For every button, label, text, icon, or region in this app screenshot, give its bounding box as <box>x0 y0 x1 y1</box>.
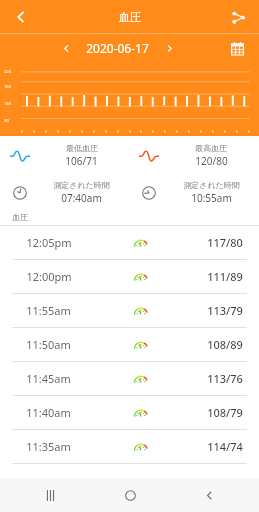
button[interactable]: 12:00pm <box>0 260 259 293</box>
staticText: 180 <box>4 84 11 89</box>
staticText: 0 <box>33 130 35 134</box>
staticText: 12:05pm <box>26 235 72 250</box>
staticText: 0 <box>93 130 95 134</box>
button[interactable]: 12:05pm <box>0 226 259 259</box>
staticText: 測定された時間 <box>53 180 110 190</box>
staticText: 0 <box>164 130 166 134</box>
staticText: 80 <box>4 118 9 123</box>
staticText: 0 <box>140 130 142 134</box>
staticText: 血圧 <box>12 212 28 222</box>
button[interactable]: 測定された時間 <box>0 180 129 205</box>
button[interactable]: 最低血圧 <box>0 143 129 168</box>
button[interactable]: 11:40am <box>0 396 259 429</box>
button[interactable]: 11:50am <box>0 328 259 361</box>
staticText: 0 <box>129 130 131 134</box>
staticText: 11:50am <box>26 337 71 352</box>
button[interactable]: 11:45am <box>0 362 259 395</box>
staticText: 0 <box>21 130 23 134</box>
staticText: 120/80 <box>195 154 228 168</box>
staticText: 最低血圧 <box>66 143 98 153</box>
staticText: 108/89 <box>207 337 243 352</box>
staticText: 2020-06-17 <box>86 40 149 56</box>
button[interactable]: Next day <box>161 40 177 56</box>
staticText: 測定された時間 <box>183 180 240 190</box>
button[interactable]: 11:55am <box>0 294 259 327</box>
button[interactable]: Home <box>116 481 144 509</box>
staticText: 114/74 <box>207 439 243 454</box>
staticText: 0 <box>212 130 214 134</box>
staticText: 0 <box>152 130 154 134</box>
staticText: 30 <box>4 135 9 140</box>
button[interactable]: Previous day <box>58 40 74 56</box>
staticText: 0 <box>105 130 107 134</box>
button[interactable]: 測定された時間 <box>129 180 259 205</box>
button[interactable]: 11:35am <box>0 430 259 463</box>
staticText: 106/71 <box>65 154 98 168</box>
staticText: 11:45am <box>26 371 71 386</box>
button[interactable]: 最高血圧 <box>129 143 259 168</box>
button[interactable]: Recents <box>36 481 64 509</box>
staticText: 0 <box>117 130 119 134</box>
staticText: 11:40am <box>26 405 71 420</box>
staticText: 0 <box>69 130 71 134</box>
staticText: 0 <box>188 130 190 134</box>
staticText: 0 <box>200 130 202 134</box>
staticText: 07:40am <box>61 191 102 205</box>
staticText: 0 <box>176 130 178 134</box>
button[interactable]: Back <box>6 2 36 32</box>
staticText: 113/76 <box>207 371 243 386</box>
staticText: 117/80 <box>207 235 243 250</box>
staticText: 113/79 <box>207 303 243 318</box>
staticText: 11:35am <box>26 439 71 454</box>
staticText: 血圧 <box>119 10 141 24</box>
button[interactable]: Share <box>223 2 253 32</box>
button[interactable]: Pick date <box>227 38 247 58</box>
staticText: 108/79 <box>207 405 243 420</box>
staticText: 0 <box>236 130 238 134</box>
button[interactable]: Back <box>195 481 223 509</box>
staticText: 0 <box>45 130 47 134</box>
staticText: 12:00pm <box>26 269 72 284</box>
staticText: 11:55am <box>26 303 71 318</box>
staticText: 10:55am <box>191 191 232 205</box>
staticText: 220 <box>4 69 11 74</box>
staticText: 最高血圧 <box>195 143 227 153</box>
staticText: 130 <box>4 101 11 106</box>
staticText: 0 <box>81 130 83 134</box>
staticText: 0 <box>248 130 250 134</box>
staticText: 0 <box>224 130 226 134</box>
staticText: 0 <box>57 130 59 134</box>
staticText: 111/89 <box>207 269 243 284</box>
